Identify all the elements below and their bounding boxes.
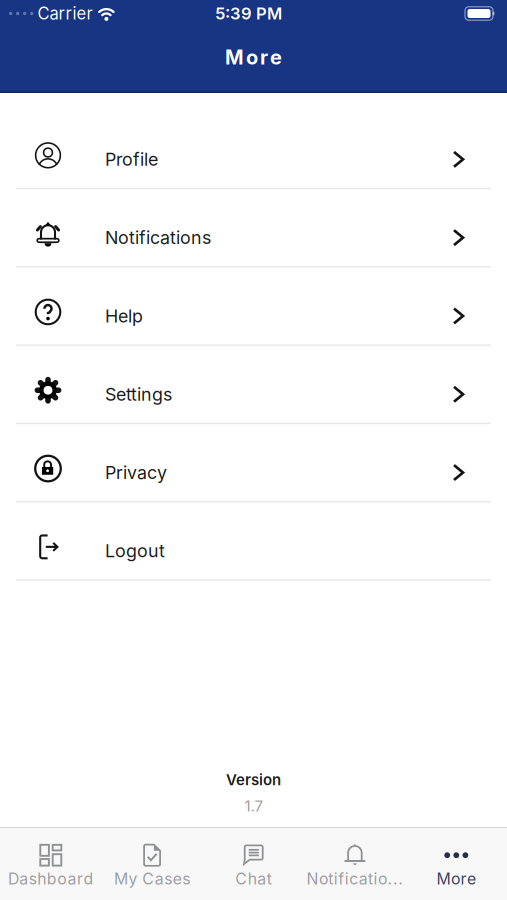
staticText: Carrier [37, 3, 92, 24]
button[interactable]: Logout [0, 502, 507, 579]
staticText: 1.7 [244, 797, 262, 815]
button[interactable]: More [406, 828, 507, 900]
staticText: o [246, 45, 258, 69]
staticText: Settings [105, 383, 172, 405]
staticText: Help [105, 305, 143, 327]
button[interactable]: Privacy [0, 424, 507, 501]
staticText: Notifications [105, 227, 211, 248]
staticText: M [225, 45, 244, 69]
staticText: Version [226, 771, 281, 789]
button[interactable]: Profile [0, 111, 507, 188]
staticText: Privacy [105, 462, 167, 483]
button[interactable]: Dashboard [0, 828, 101, 900]
staticText: Profile [105, 149, 158, 170]
staticText: e [270, 45, 282, 69]
button[interactable]: Chat [203, 828, 304, 900]
button[interactable]: Settings [0, 346, 507, 423]
staticText: 5:39 PM [215, 3, 282, 24]
staticText: More [437, 869, 476, 888]
button[interactable]: My Cases [101, 828, 203, 900]
button[interactable]: Help [0, 268, 507, 344]
staticText: Logout [105, 540, 165, 562]
button[interactable]: Notifications [0, 189, 507, 266]
button[interactable]: Notificatio... [304, 828, 406, 900]
staticText: Notificatio... [306, 869, 403, 888]
staticText: My Cases [114, 869, 190, 888]
staticText: Dashboard [8, 869, 93, 888]
staticText: r [260, 45, 268, 69]
staticText: Chat [235, 869, 272, 888]
